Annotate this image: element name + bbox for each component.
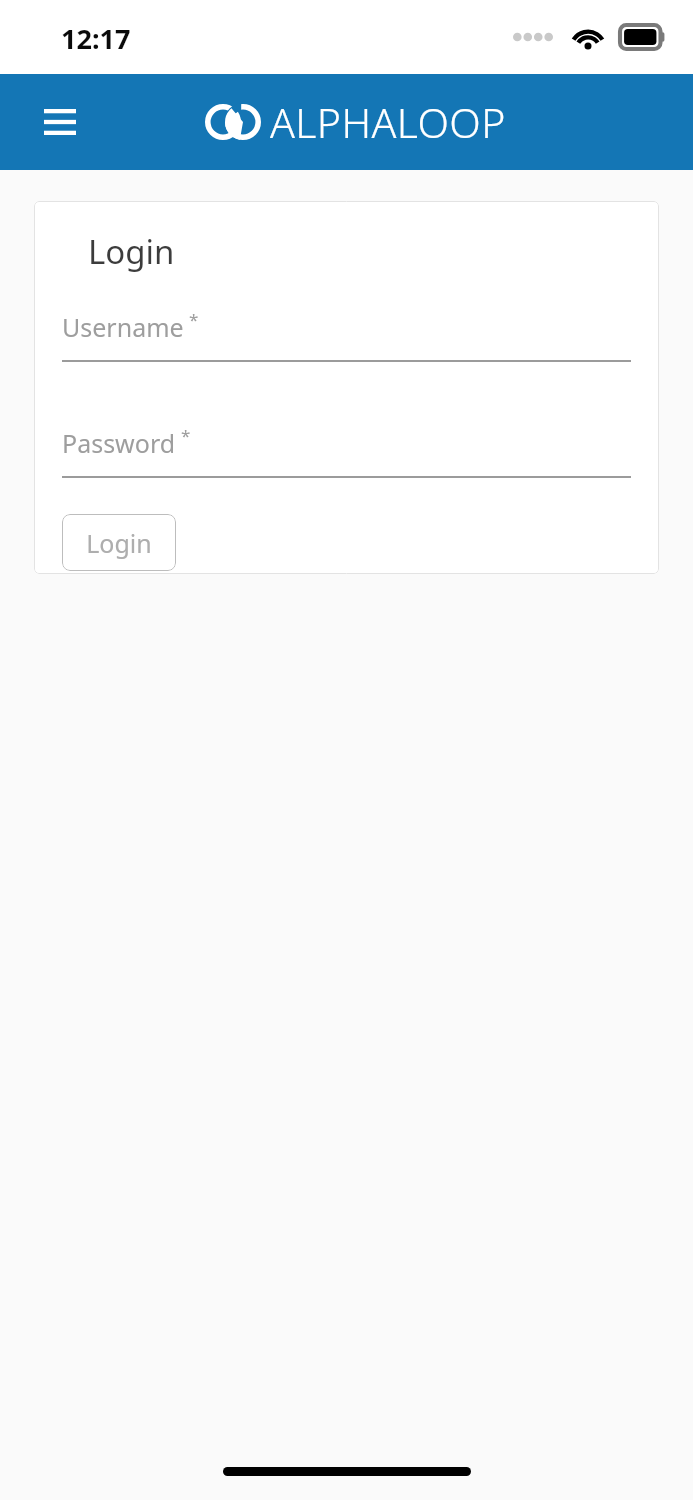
staticText: * [181,424,191,447]
staticText: Login [88,229,175,274]
button[interactable]: Login [62,514,176,571]
button[interactable]: Username [62,310,631,362]
staticText: Username [62,310,184,344]
button[interactable]: Password [62,426,631,478]
staticText: Login [86,526,152,560]
staticText: 12:17 [61,20,131,57]
staticText: * [189,308,199,331]
button[interactable]: Open navigation menu [30,92,90,152]
staticText: ALPHALOOP [270,94,506,150]
staticText: Password [62,426,176,460]
